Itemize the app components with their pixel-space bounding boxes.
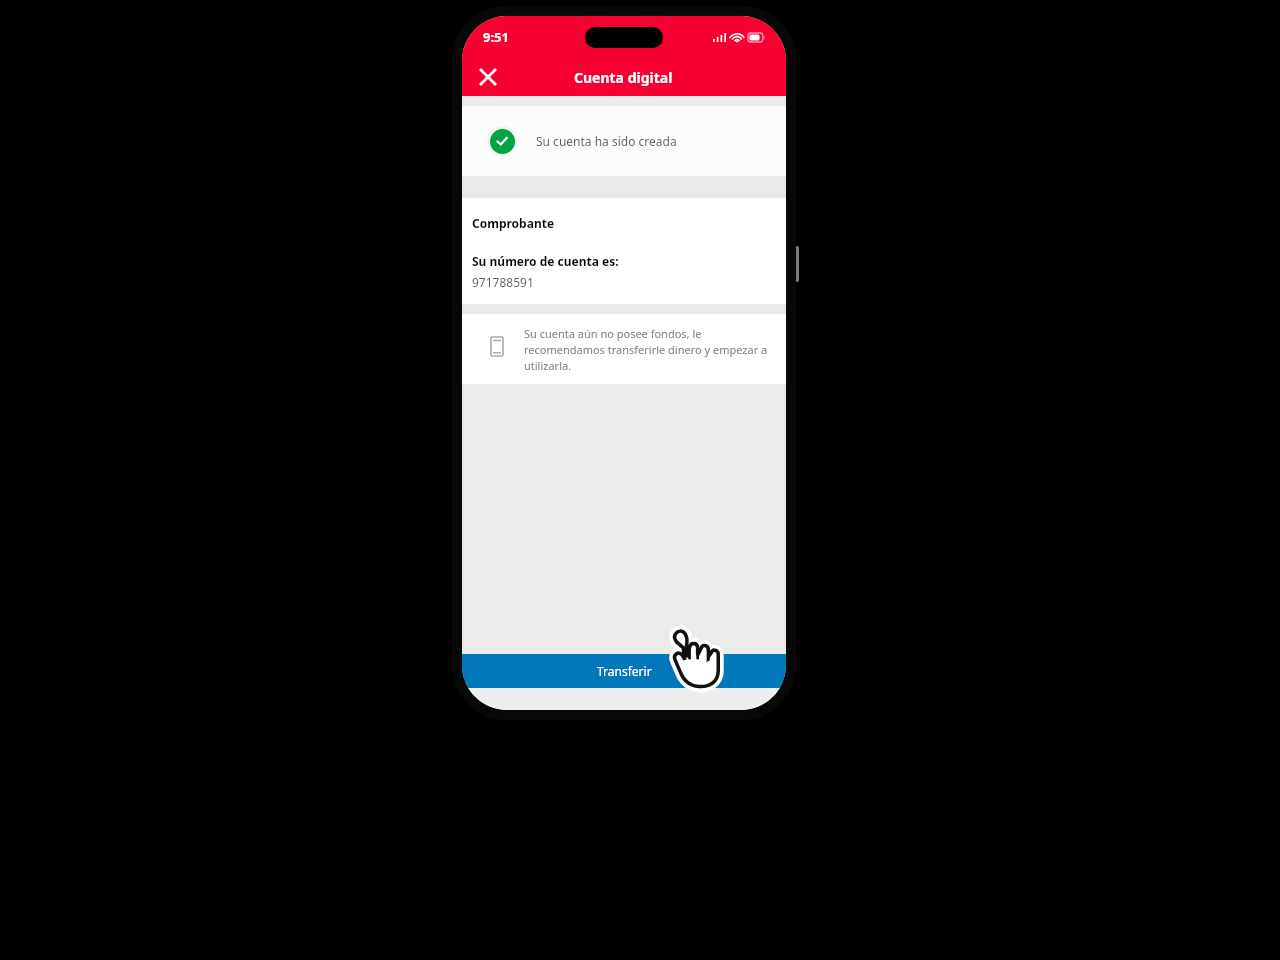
staticText: 9:51 [483,28,509,46]
staticText: Transferir [597,663,652,679]
staticText: Su cuenta ha sido creada [536,133,677,149]
button[interactable]: Cerrar [470,59,506,95]
staticText: Cuenta digital [574,68,673,87]
staticText: Su número de cuenta es: [472,253,619,269]
button[interactable]: Transferir [462,654,786,688]
staticText: Su cuenta aún no posee fondos, le recome… [524,326,774,373]
staticText: 971788591 [472,274,534,290]
staticText: Comprobante [472,215,555,231]
